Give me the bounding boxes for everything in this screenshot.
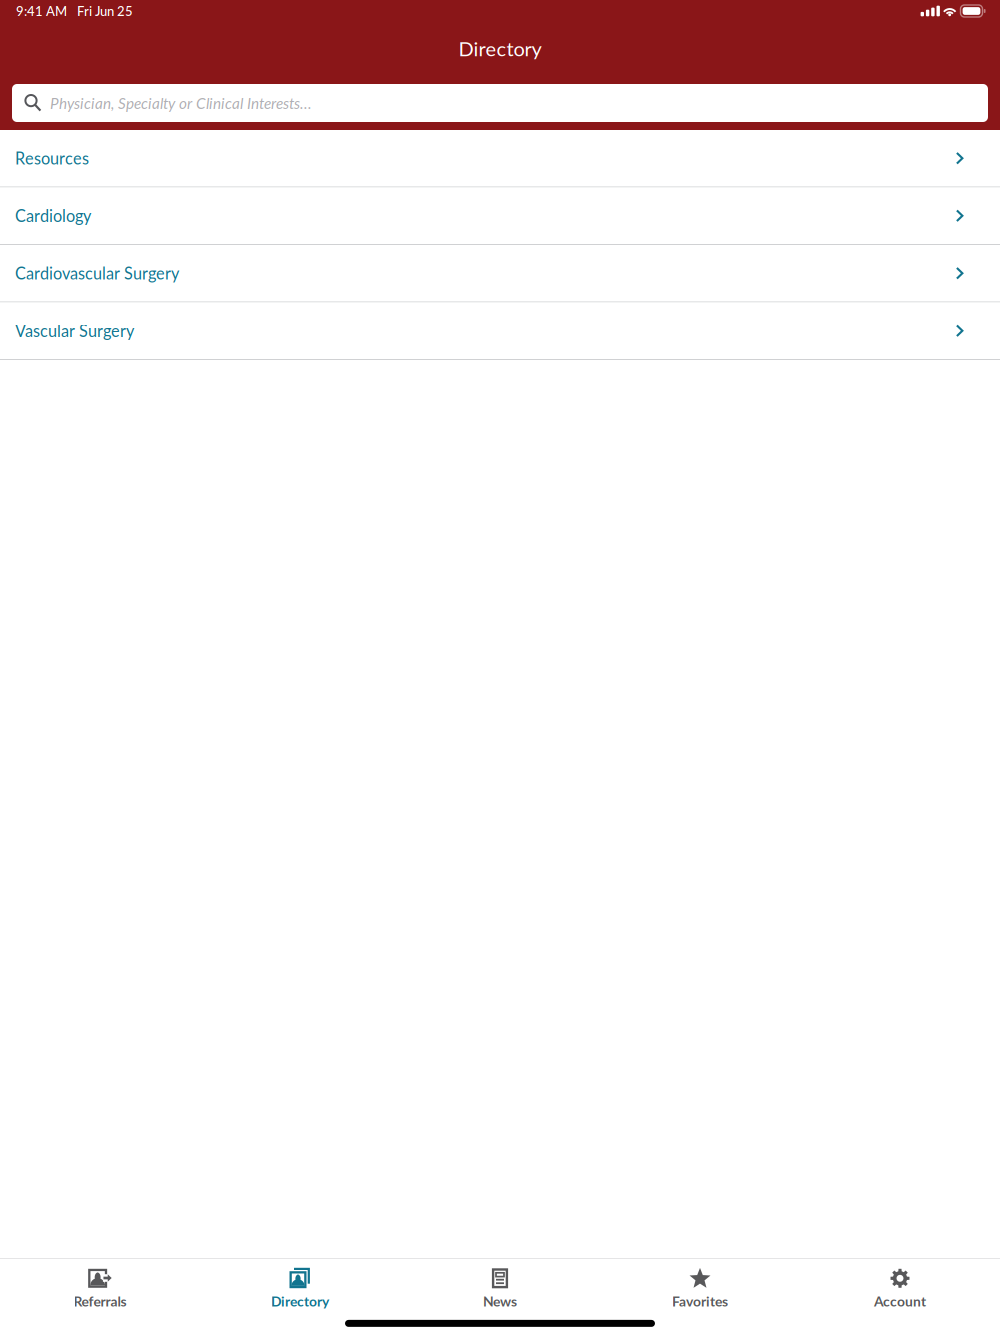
staticText: Physician, Specialty or Clinical Interes… <box>50 94 312 112</box>
button[interactable]: Account <box>800 1259 1000 1313</box>
button[interactable]: Physician, Specialty or Clinical Interes… <box>12 84 988 122</box>
button[interactable]: Cardiovascular Surgery <box>0 245 1000 302</box>
button[interactable]: Cardiology <box>0 187 1000 245</box>
staticText: News <box>483 1293 517 1309</box>
button[interactable]: News <box>400 1259 600 1313</box>
button[interactable]: Resources <box>0 130 1000 187</box>
staticText: Favorites <box>672 1293 728 1309</box>
staticText: Directory <box>271 1293 329 1309</box>
button[interactable]: Referrals <box>0 1259 200 1313</box>
button[interactable]: Favorites <box>600 1259 800 1313</box>
staticText: Cardiovascular Surgery <box>15 263 179 283</box>
staticText: Cardiology <box>15 206 91 225</box>
staticText: Account <box>874 1293 926 1309</box>
staticText: Directory <box>458 36 541 60</box>
staticText: 9:41 AM <box>16 3 67 19</box>
staticText: Referrals <box>73 1293 126 1309</box>
staticText: Fri Jun 25 <box>77 3 133 19</box>
staticText: Resources <box>15 148 89 168</box>
button[interactable]: Vascular Surgery <box>0 302 1000 360</box>
button[interactable]: Directory <box>200 1259 400 1313</box>
staticText: Vascular Surgery <box>15 321 134 340</box>
